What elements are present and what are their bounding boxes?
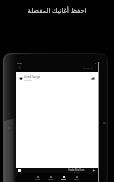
staticText: Playlist xyxy=(24,79,32,82)
button[interactable]: Library xyxy=(57,173,70,182)
button[interactable]: Back xyxy=(18,66,21,69)
button[interactable]: Search xyxy=(44,173,57,182)
button[interactable]: Home xyxy=(31,173,44,182)
staticText: احفظ أغانيك المفضلة xyxy=(0,6,114,15)
staticText: Liked Songs xyxy=(24,75,41,79)
button[interactable]: Profile xyxy=(70,173,83,182)
button[interactable]: Play xyxy=(92,169,96,172)
staticText: المفضلة xyxy=(83,66,93,69)
button[interactable]: Hada Ma Kan xyxy=(16,168,98,173)
button[interactable]: Download xyxy=(90,76,95,81)
staticText: Artist xyxy=(74,171,80,174)
button[interactable]: Liked Songs xyxy=(16,72,98,84)
staticText: Hada Ma Kan xyxy=(68,168,85,172)
